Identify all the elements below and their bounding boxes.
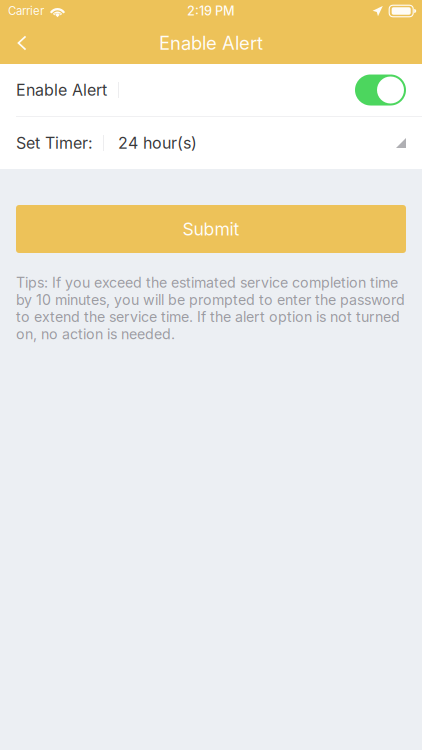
- staticText: Tips: If you exceed the estimated servic…: [16, 274, 405, 343]
- staticText: Submit: [182, 218, 239, 240]
- button[interactable]: Back: [0, 22, 44, 64]
- staticText: Set Timer:: [16, 133, 93, 153]
- staticText: 2:19 PM: [187, 3, 235, 19]
- button[interactable]: Submit: [16, 205, 406, 253]
- staticText: Enable Alert: [159, 32, 263, 54]
- staticText: Enable Alert: [16, 80, 107, 100]
- button[interactable]: Enable Alert, on: [349, 74, 406, 105]
- staticText: Carrier: [8, 4, 44, 18]
- staticText: 24 hour(s): [118, 133, 197, 153]
- button[interactable]: Set Timer:: [0, 117, 422, 169]
